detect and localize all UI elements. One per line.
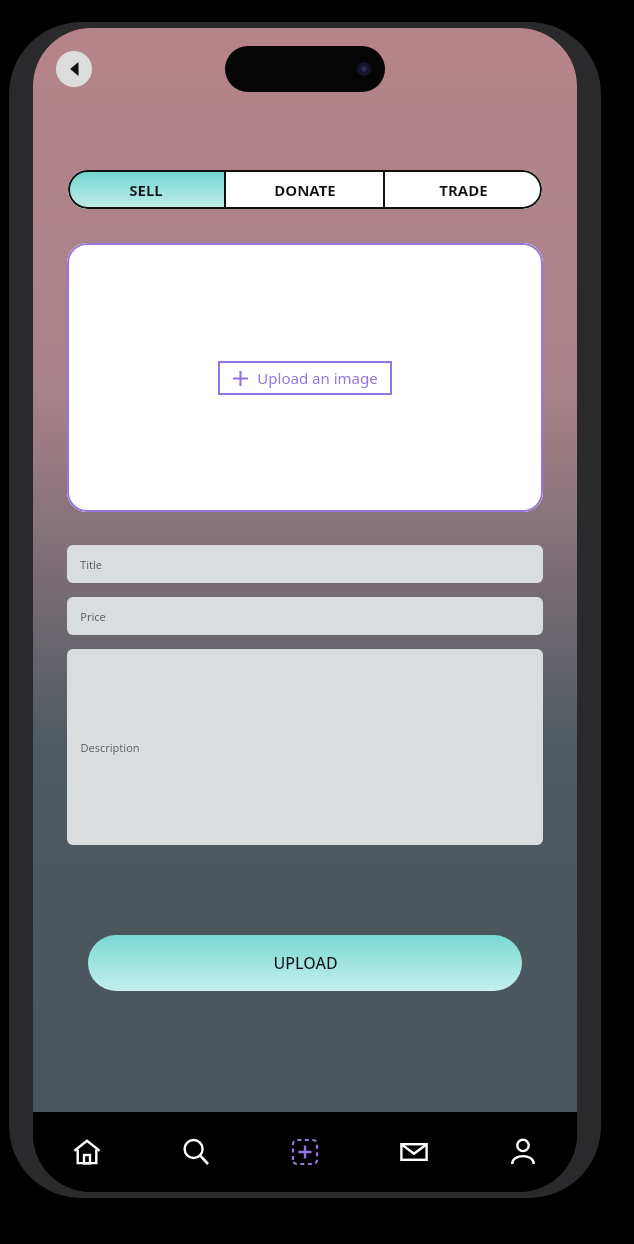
button[interactable]: Messages	[359, 1112, 468, 1192]
staticText: Title	[80, 557, 102, 572]
staticText: TRADE	[439, 180, 488, 200]
button[interactable]: Title	[67, 545, 543, 583]
button[interactable]: Create	[250, 1112, 359, 1192]
button[interactable]: Back	[56, 51, 92, 87]
button[interactable]: Description	[67, 649, 543, 845]
button[interactable]: Home	[33, 1112, 141, 1192]
button[interactable]: Profile	[468, 1112, 577, 1192]
button[interactable]: DONATE	[226, 170, 383, 209]
staticText: DONATE	[274, 180, 336, 200]
staticText: Description	[80, 740, 140, 755]
button[interactable]: SELL	[68, 170, 224, 209]
button[interactable]: TRADE	[385, 170, 542, 209]
button[interactable]: Upload an image	[218, 361, 392, 395]
staticText: Upload an image	[257, 368, 378, 388]
staticText: SELL	[129, 180, 163, 200]
button[interactable]: UPLOAD	[88, 935, 522, 991]
staticText: Price	[80, 609, 106, 624]
button[interactable]: Search	[141, 1112, 250, 1192]
button[interactable]: Price	[67, 597, 543, 635]
staticText: UPLOAD	[273, 952, 338, 974]
